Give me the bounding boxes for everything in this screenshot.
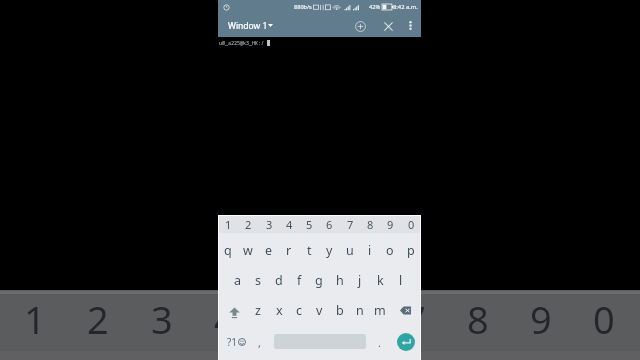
button[interactable]: q bbox=[218, 234, 238, 266]
button[interactable]: w bbox=[238, 234, 258, 266]
staticText: 7 bbox=[347, 217, 354, 232]
staticText: 2 bbox=[245, 217, 252, 232]
button[interactable]: Window 1 bbox=[223, 15, 278, 37]
staticText: . bbox=[378, 335, 381, 350]
staticText: m bbox=[374, 302, 386, 319]
staticText: t bbox=[307, 242, 312, 259]
button[interactable]: 2 bbox=[238, 215, 258, 233]
button[interactable]: 0 bbox=[401, 215, 421, 233]
button[interactable]: u bbox=[340, 234, 360, 266]
staticText: 9 bbox=[530, 293, 552, 345]
button[interactable]: 5 bbox=[299, 215, 319, 233]
button[interactable]: Symbols bbox=[223, 326, 249, 358]
button[interactable]: n bbox=[350, 294, 370, 326]
button[interactable]: p bbox=[401, 234, 421, 266]
staticText: q bbox=[224, 242, 232, 259]
button[interactable]: a bbox=[228, 264, 248, 296]
button[interactable]: m bbox=[370, 294, 390, 326]
staticText: a bbox=[234, 272, 242, 289]
staticText: 3 bbox=[151, 293, 173, 345]
staticText: 8:42 a.m. bbox=[393, 3, 418, 11]
button[interactable]: Close window bbox=[377, 15, 399, 37]
staticText: v bbox=[316, 302, 323, 319]
button[interactable]: 1 bbox=[218, 215, 238, 233]
staticText: 8 bbox=[467, 293, 489, 345]
button[interactable]: 7 bbox=[340, 215, 360, 233]
staticText: h bbox=[336, 272, 344, 289]
staticText: 2 bbox=[87, 293, 109, 345]
staticText: d bbox=[275, 272, 283, 289]
staticText: j bbox=[358, 272, 362, 289]
button[interactable]: l bbox=[391, 264, 411, 296]
staticText: n bbox=[356, 302, 364, 319]
button[interactable]: b bbox=[330, 294, 350, 326]
staticText: 4 bbox=[286, 217, 293, 232]
staticText: 5 bbox=[277, 293, 299, 345]
button[interactable]: k bbox=[370, 264, 390, 296]
staticText: x bbox=[276, 302, 283, 319]
staticText: 880b/s bbox=[294, 3, 312, 11]
button[interactable]: g bbox=[309, 264, 329, 296]
staticText: l bbox=[399, 272, 403, 289]
button[interactable]: z bbox=[248, 294, 268, 326]
button[interactable]: d bbox=[269, 264, 289, 296]
button[interactable]: Enter bbox=[397, 333, 415, 351]
button[interactable]: , bbox=[251, 326, 267, 358]
staticText: Window 1 bbox=[228, 20, 268, 32]
staticText: ?1 bbox=[227, 335, 238, 349]
staticText: 1 bbox=[24, 293, 46, 345]
staticText: c bbox=[296, 302, 303, 319]
staticText: e bbox=[265, 242, 273, 259]
button[interactable]: 4 bbox=[279, 215, 299, 233]
button[interactable]: c bbox=[289, 294, 309, 326]
staticText: w bbox=[243, 242, 253, 259]
button[interactable]: o bbox=[380, 234, 400, 266]
button[interactable]: 9 bbox=[380, 215, 400, 233]
button[interactable]: s bbox=[248, 264, 268, 296]
staticText: 3 bbox=[266, 217, 273, 232]
button[interactable]: t bbox=[299, 234, 319, 266]
button[interactable]: j bbox=[350, 264, 370, 296]
staticText: o bbox=[386, 242, 394, 259]
button[interactable]: Backspace bbox=[396, 294, 416, 326]
staticText: 6 bbox=[340, 293, 362, 345]
button[interactable]: v bbox=[309, 294, 329, 326]
staticText: 42% bbox=[369, 3, 381, 11]
button[interactable]: Shift bbox=[223, 294, 246, 326]
staticText: 1 bbox=[225, 217, 232, 232]
staticText: i bbox=[368, 242, 372, 259]
staticText: 6 bbox=[326, 217, 333, 232]
staticText: s bbox=[255, 272, 261, 289]
button[interactable]: 3 bbox=[259, 215, 279, 233]
staticText: u bbox=[346, 242, 354, 259]
staticText: z bbox=[255, 302, 261, 319]
button[interactable]: i bbox=[360, 234, 380, 266]
button[interactable]: y bbox=[319, 234, 339, 266]
staticText: y bbox=[326, 242, 333, 259]
button[interactable]: More options bbox=[400, 15, 421, 36]
button[interactable]: r bbox=[279, 234, 299, 266]
staticText: r bbox=[286, 242, 292, 259]
staticText: g bbox=[315, 272, 323, 289]
staticText: 8 bbox=[367, 217, 374, 232]
button[interactable]: 6 bbox=[319, 215, 339, 233]
staticText: u0_a225@k3_HK:/ $ bbox=[219, 40, 271, 47]
staticText: 0 bbox=[593, 293, 615, 345]
button[interactable]: f bbox=[289, 264, 309, 296]
staticText: k bbox=[377, 272, 384, 289]
button[interactable]: h bbox=[330, 264, 350, 296]
staticText: b bbox=[336, 302, 344, 319]
staticText: 9 bbox=[387, 217, 394, 232]
staticText: 5 bbox=[306, 217, 313, 232]
button[interactable]: e bbox=[259, 234, 279, 266]
staticText: f bbox=[297, 272, 302, 289]
button[interactable]: . bbox=[371, 326, 387, 358]
staticText: 4 bbox=[214, 293, 236, 345]
staticText: 0 bbox=[408, 217, 415, 232]
button[interactable]: 8 bbox=[360, 215, 380, 233]
staticText: 7 bbox=[404, 293, 426, 345]
button[interactable]: New window bbox=[349, 15, 371, 37]
staticText: , bbox=[258, 335, 261, 350]
button[interactable]: x bbox=[269, 294, 289, 326]
